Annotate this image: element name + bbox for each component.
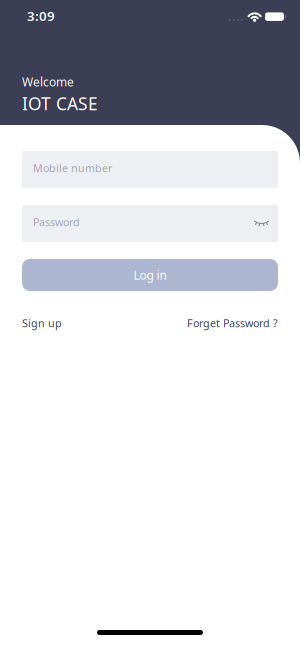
- button[interactable]: Mobile number: [22, 151, 278, 188]
- staticText: IOT CASE: [22, 92, 98, 115]
- button[interactable]: Forget Password ?: [187, 316, 278, 330]
- button[interactable]: Log in: [22, 259, 278, 291]
- staticText: Log in: [133, 267, 166, 283]
- staticText: Forget Password ?: [187, 316, 278, 330]
- button[interactable]: Password: [22, 205, 278, 242]
- staticText: Mobile number: [33, 161, 112, 175]
- button[interactable]: Show password: [254, 220, 278, 227]
- staticText: Password: [33, 215, 80, 229]
- staticText: Sign up: [22, 316, 62, 330]
- staticText: Welcome: [22, 74, 74, 90]
- button[interactable]: Sign up: [22, 316, 62, 330]
- staticText: 3:09: [27, 7, 55, 25]
